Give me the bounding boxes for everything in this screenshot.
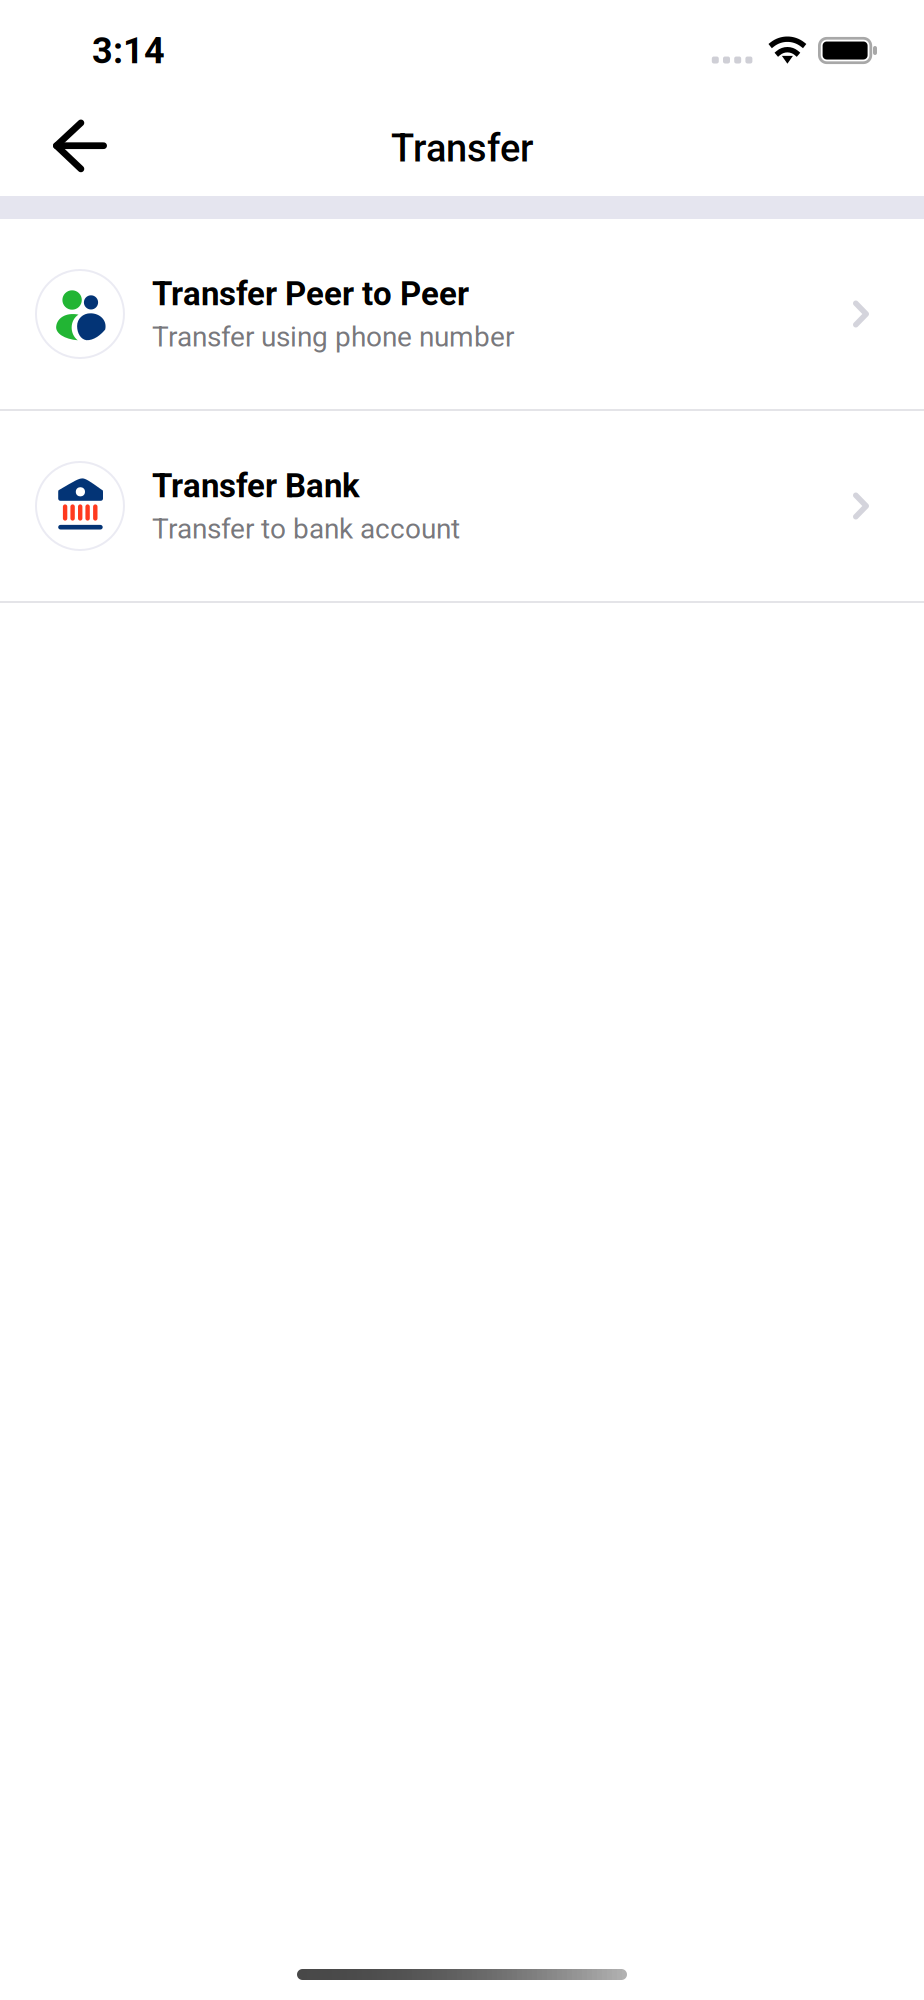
- staticText: 3:14: [92, 30, 165, 72]
- staticText: Transfer: [391, 126, 533, 171]
- button[interactable]: Back: [0, 101, 131, 190]
- staticText: Transfer Peer to Peer: [152, 275, 469, 313]
- button[interactable]: Transfer Peer to Peer: [0, 219, 924, 409]
- staticText: Transfer Bank: [152, 467, 360, 505]
- staticText: Transfer using phone number: [152, 320, 514, 353]
- button[interactable]: Transfer Bank: [0, 411, 924, 601]
- staticText: Transfer to bank account: [152, 512, 460, 545]
